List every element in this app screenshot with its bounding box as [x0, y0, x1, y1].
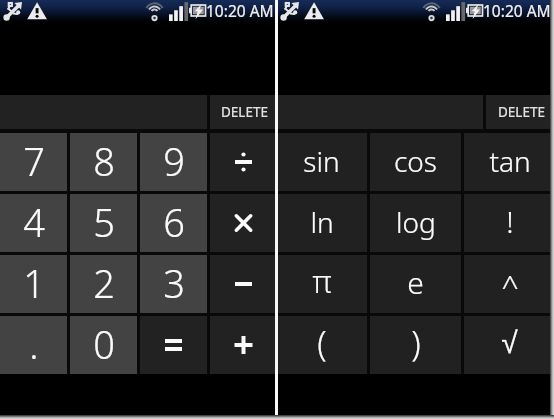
button[interactable]: log	[370, 194, 461, 252]
staticText: ^	[501, 265, 519, 306]
button[interactable]: ^	[464, 255, 554, 313]
staticText: 0	[93, 318, 115, 370]
staticText: DELETE	[221, 103, 268, 121]
button[interactable]: 7	[0, 133, 67, 191]
button[interactable]: 0	[70, 316, 137, 374]
button[interactable]: cos	[370, 133, 461, 191]
staticText: √	[501, 326, 518, 360]
button[interactable]: tan	[464, 133, 554, 191]
staticText: 10:20 AM	[206, 0, 274, 21]
staticText: 3	[163, 257, 185, 309]
button[interactable]: )	[370, 316, 461, 374]
staticText: )	[411, 320, 421, 366]
button[interactable]: 8	[70, 133, 137, 191]
button[interactable]: 4	[0, 194, 67, 252]
staticText: tan	[489, 142, 531, 180]
button[interactable]: ln	[276, 194, 367, 252]
staticText: 7	[23, 135, 45, 187]
button[interactable]: Subtract	[210, 255, 277, 313]
staticText: 5	[93, 196, 115, 248]
button[interactable]	[277, 95, 483, 129]
staticText: 10:20 AM	[483, 0, 551, 21]
button[interactable]: Add	[210, 316, 277, 374]
button[interactable]: Multiply	[210, 194, 277, 252]
button[interactable]: Equals	[140, 316, 207, 374]
button[interactable]: DELETE	[210, 95, 279, 129]
button[interactable]: 6	[140, 194, 207, 252]
button[interactable]: 5	[70, 194, 137, 252]
staticText: 6	[163, 196, 185, 248]
staticText: 2	[93, 257, 115, 309]
button[interactable]	[277, 22, 554, 95]
button[interactable]: e	[370, 255, 461, 313]
staticText: sin	[303, 142, 340, 180]
button[interactable]: π	[276, 255, 367, 313]
staticText: π	[312, 260, 332, 302]
staticText: e	[407, 262, 424, 303]
button[interactable]: 3	[140, 255, 207, 313]
button[interactable]	[0, 22, 277, 95]
staticText: (	[317, 320, 327, 366]
button[interactable]: .	[0, 316, 67, 374]
button[interactable]: !	[464, 194, 554, 252]
button[interactable]: 1	[0, 255, 67, 313]
staticText: 9	[163, 135, 185, 187]
staticText: 8	[93, 135, 115, 187]
staticText: !	[506, 201, 514, 242]
button[interactable]: DELETE	[486, 95, 554, 129]
button[interactable]: 9	[140, 133, 207, 191]
staticText: 4	[23, 196, 45, 248]
staticText: cos	[394, 142, 437, 180]
button[interactable]: √	[464, 316, 554, 374]
button[interactable]: sin	[276, 133, 367, 191]
staticText: 1	[23, 257, 45, 309]
staticText: log	[396, 203, 436, 241]
staticText: .	[29, 318, 39, 370]
button[interactable]: (	[276, 316, 367, 374]
button[interactable]: 2	[70, 255, 137, 313]
staticText: ln	[310, 203, 334, 241]
button[interactable]: Divide	[210, 133, 277, 191]
staticText: DELETE	[498, 103, 545, 121]
